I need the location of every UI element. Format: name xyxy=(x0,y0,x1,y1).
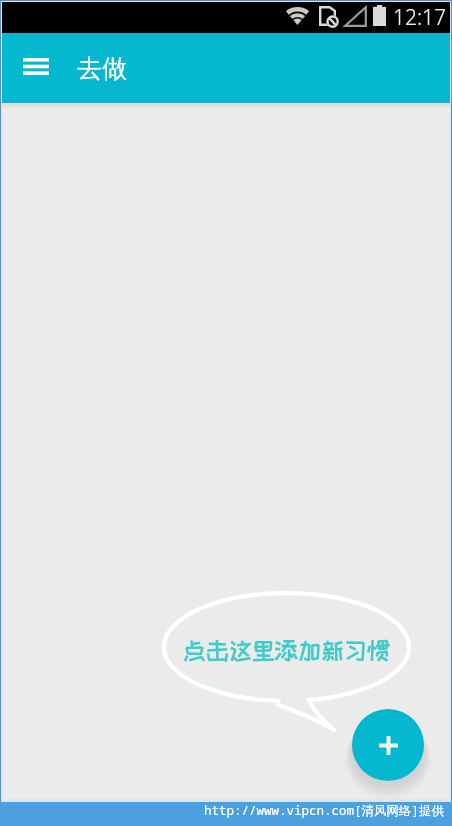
button[interactable]: Open navigation menu xyxy=(11,41,61,91)
staticText: 12:17 xyxy=(393,3,447,32)
button[interactable]: Add new habit xyxy=(352,709,424,781)
staticText: http://www.vipcn.com[清风网络]提供 xyxy=(204,802,445,819)
staticText: 去做 xyxy=(77,53,127,84)
staticText: 点击这里添加新习惯 xyxy=(183,638,391,663)
